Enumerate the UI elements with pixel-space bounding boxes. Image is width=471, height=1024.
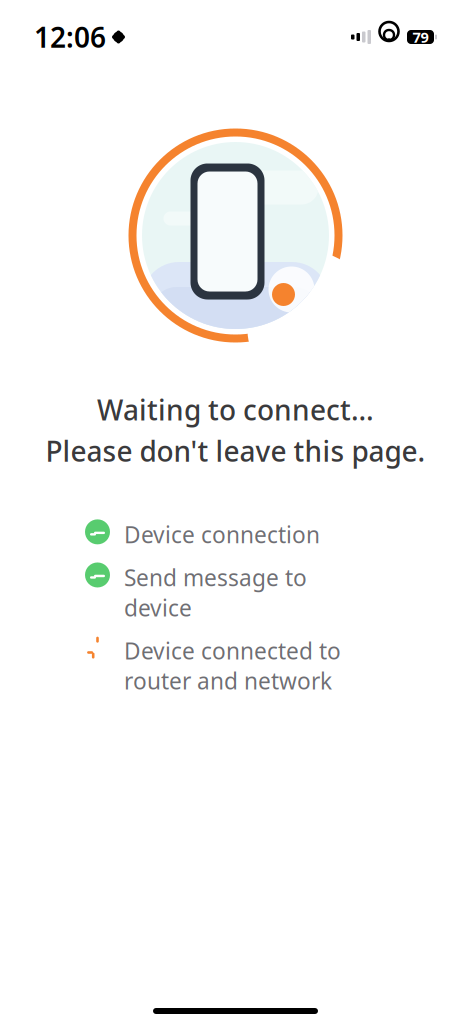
staticText: 79: [412, 27, 428, 47]
staticText: Device connection: [124, 519, 320, 549]
staticText: Please don't leave this page.: [45, 432, 425, 469]
staticText: 12:06: [34, 18, 106, 56]
staticText: Send message to device: [124, 562, 307, 623]
staticText: Waiting to connect…: [97, 391, 374, 428]
staticText: Device connected to router and network: [124, 636, 341, 696]
